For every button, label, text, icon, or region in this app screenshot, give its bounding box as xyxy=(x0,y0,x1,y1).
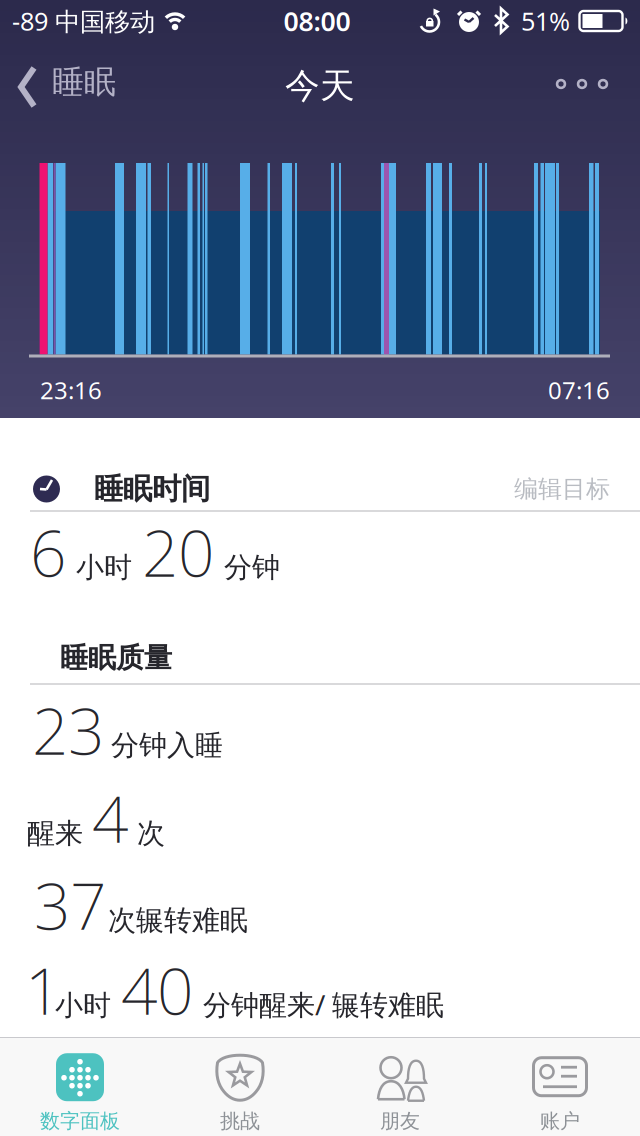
staticText: 睡眠质量 xyxy=(60,641,172,675)
staticText: 小时 xyxy=(76,550,132,585)
staticText: 20 xyxy=(142,509,214,594)
staticText: 6 xyxy=(30,509,66,594)
staticText: 4 xyxy=(92,775,128,860)
button[interactable]: 睡眠 xyxy=(0,44,116,120)
staticText: 分钟醒来/ 辗转难眠 xyxy=(203,986,444,1023)
staticText: 40 xyxy=(121,947,193,1032)
staticText: 08:00 xyxy=(283,3,350,39)
staticText: 分钟入睡 xyxy=(111,728,223,763)
staticText: -89 中国移动 xyxy=(12,4,155,38)
staticText: 次辗转难眠 xyxy=(108,903,248,938)
button[interactable]: 编辑目标 xyxy=(514,467,610,511)
staticText: 睡眠时间 xyxy=(94,471,210,507)
staticText: 07:16 xyxy=(548,374,610,406)
button[interactable]: More xyxy=(542,62,622,106)
staticText: 分钟 xyxy=(224,550,280,585)
staticText: 小时 xyxy=(55,988,111,1023)
staticText: 朋友 xyxy=(380,1109,420,1133)
staticText: 23:16 xyxy=(40,374,102,406)
staticText: 睡眠 xyxy=(52,62,116,102)
button[interactable]: 数字面板 xyxy=(0,1038,160,1136)
staticText: 1 xyxy=(25,947,61,1032)
staticText: 数字面板 xyxy=(40,1109,120,1133)
staticText: 次 xyxy=(137,816,165,851)
button[interactable]: 账户 xyxy=(480,1038,640,1136)
staticText: 醒来 xyxy=(27,816,83,851)
staticText: 挑战 xyxy=(220,1109,260,1133)
staticText: 今天 xyxy=(285,65,355,107)
staticText: 51% xyxy=(521,4,570,38)
staticText: 23 xyxy=(32,687,104,772)
button[interactable]: 挑战 xyxy=(160,1038,320,1136)
staticText: 账户 xyxy=(540,1109,580,1133)
staticText: 37 xyxy=(34,862,106,947)
staticText: 编辑目标 xyxy=(514,474,610,504)
button[interactable]: 朋友 xyxy=(320,1038,480,1136)
